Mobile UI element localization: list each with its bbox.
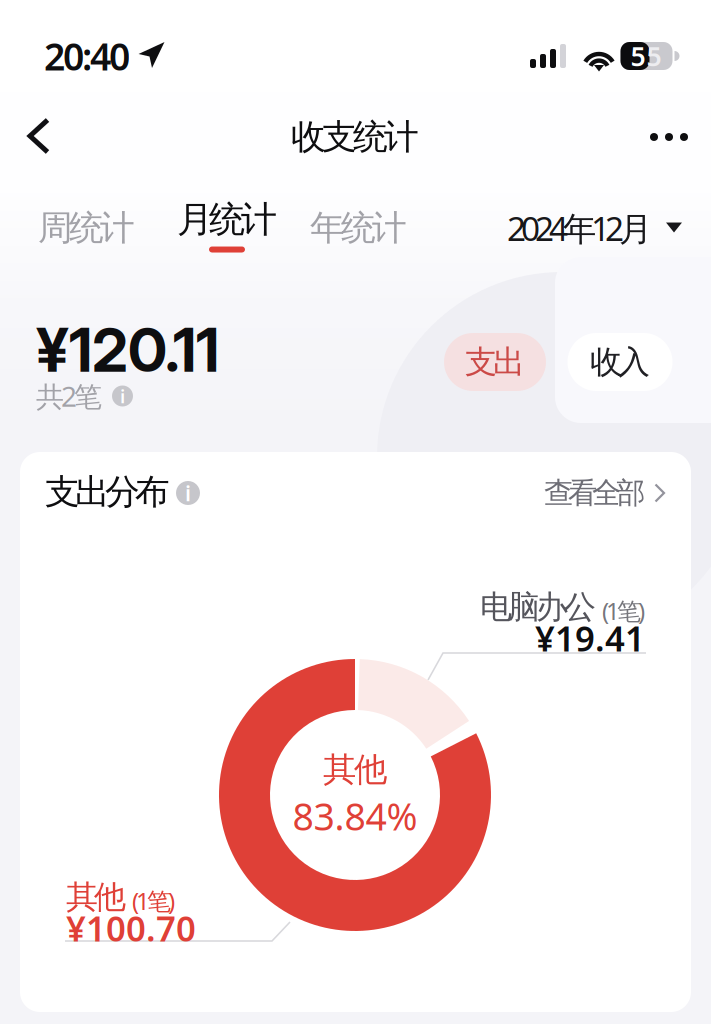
- button[interactable]: 2024年12月: [507, 200, 682, 256]
- staticText: ¥120.11: [36, 314, 219, 386]
- staticText: 年统计: [310, 207, 407, 249]
- button[interactable]: Back: [6, 99, 72, 173]
- staticText: 20:40: [44, 31, 130, 81]
- staticText: i: [120, 384, 125, 408]
- button[interactable]: 月统计: [163, 197, 291, 252]
- button[interactable]: 周统计: [24, 200, 149, 256]
- staticText: 5: [630, 38, 645, 74]
- button[interactable]: 收入: [567, 333, 672, 391]
- staticText: 收支统计: [291, 116, 419, 158]
- staticText: 其他: [323, 749, 387, 790]
- staticText: ¥19.41: [535, 615, 645, 661]
- staticText: 83.84%: [292, 791, 417, 841]
- staticText: ¥100.70: [66, 905, 196, 951]
- staticText: 查看全部: [544, 475, 645, 511]
- button[interactable]: 年统计: [296, 200, 421, 256]
- staticText: 其他: [66, 877, 126, 917]
- staticText: 支出: [465, 342, 525, 382]
- staticText: 共2笔: [36, 377, 102, 415]
- staticText: 支出分布: [45, 471, 170, 513]
- staticText: 收入: [590, 342, 650, 382]
- staticText: 2024年12月: [507, 206, 652, 250]
- staticText: i: [185, 479, 191, 507]
- staticText: 周统计: [38, 207, 135, 249]
- staticText: 电脑办公: [480, 587, 596, 627]
- staticText: (1笔): [132, 885, 175, 917]
- button[interactable]: 查看全部: [544, 471, 666, 515]
- staticText: 5: [646, 38, 661, 74]
- staticText: 月统计: [177, 197, 277, 242]
- button[interactable]: More: [632, 106, 706, 168]
- button[interactable]: 支出: [444, 333, 546, 391]
- staticText: (1笔): [602, 595, 645, 627]
